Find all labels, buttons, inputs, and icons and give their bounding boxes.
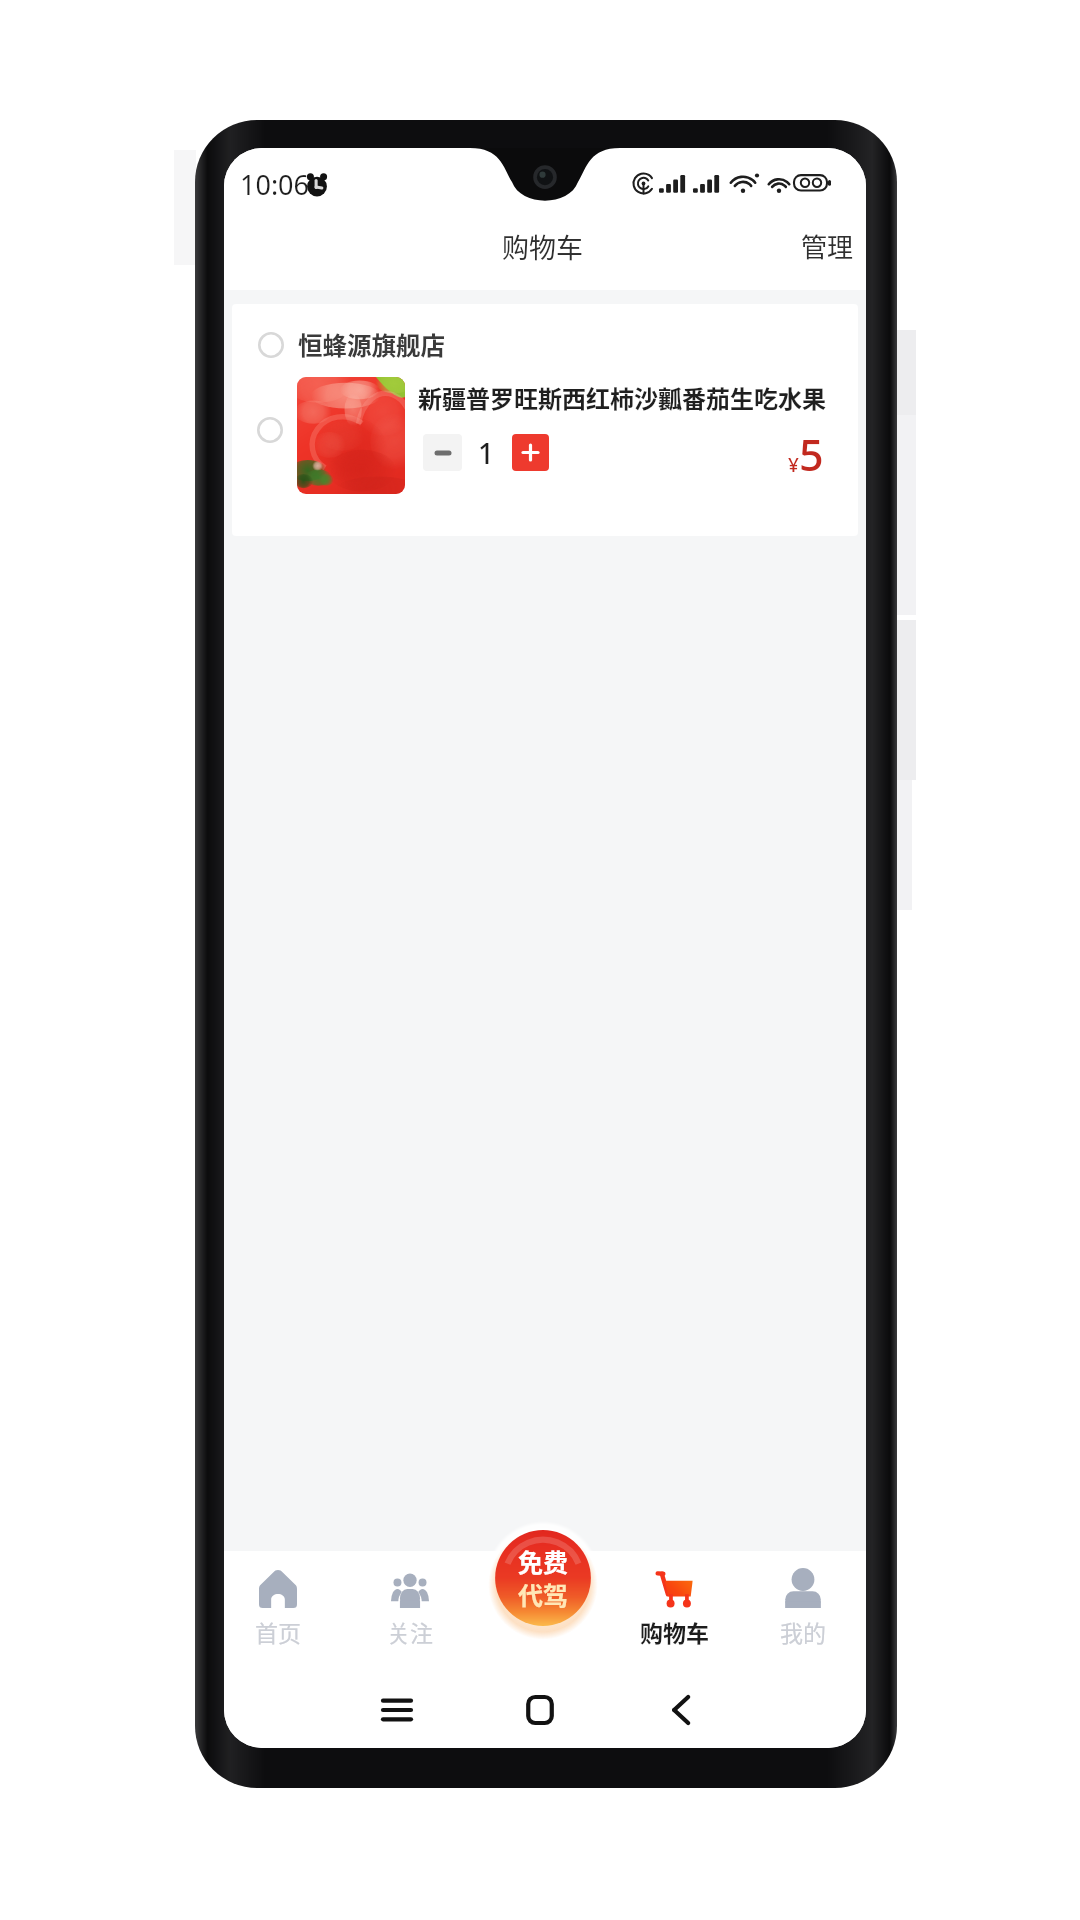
button[interactable]: Increase quantity	[512, 434, 549, 471]
button[interactable]: Home	[508, 1678, 572, 1742]
button[interactable]: 关注	[348, 1553, 472, 1663]
staticText: 管理	[801, 227, 854, 265]
button[interactable]: Decrease quantity	[423, 434, 462, 471]
staticText: 恒蜂源旗舰店	[298, 327, 445, 362]
button[interactable]: 管理	[784, 218, 866, 280]
button[interactable]: 免费代驾	[486, 1521, 600, 1635]
button[interactable]: 我的	[741, 1553, 865, 1663]
staticText: 关注	[387, 1615, 433, 1648]
staticText: 5	[799, 425, 824, 484]
button[interactable]: Product photo	[297, 377, 405, 494]
button[interactable]: 首页	[224, 1553, 340, 1663]
staticText: 首页	[255, 1615, 301, 1648]
staticText: 免费	[518, 1543, 569, 1579]
button[interactable]: 新疆普罗旺斯西红柿沙瓤番茄生吃水果	[412, 372, 852, 414]
staticText: 1	[478, 434, 495, 471]
staticText: 我的	[780, 1615, 826, 1648]
button[interactable]: Back	[650, 1678, 714, 1742]
staticText: ¥	[788, 452, 799, 478]
button[interactable]: Select store	[246, 320, 496, 370]
staticText: 购物车	[640, 1615, 709, 1648]
button[interactable]: Select item	[244, 404, 296, 456]
other: Select store	[258, 332, 284, 358]
button[interactable]: 购物车	[612, 1553, 736, 1663]
staticText: 10:06	[240, 166, 310, 203]
staticText: 代驾	[518, 1576, 569, 1612]
staticText: 购物车	[502, 227, 583, 266]
button[interactable]: Recents	[365, 1678, 429, 1742]
staticText: 新疆普罗旺斯西红柿沙瓤番茄生吃水果	[418, 380, 826, 415]
button[interactable]: 购物车	[224, 218, 866, 280]
